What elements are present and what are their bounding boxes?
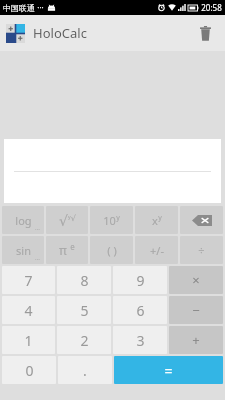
staticText: ...: [35, 254, 40, 262]
staticText: 3: [136, 331, 145, 350]
staticText: +/-: [150, 243, 164, 258]
staticText: +: [192, 331, 200, 349]
staticText: ( ): [107, 243, 117, 258]
staticText: π: [59, 242, 67, 258]
button[interactable]: sin: [2, 236, 44, 264]
button[interactable]: 2: [57, 326, 111, 354]
button[interactable]: Pi and e constants: [46, 236, 88, 264]
button[interactable]: x: [135, 206, 178, 234]
staticText: 5: [80, 301, 89, 320]
button[interactable]: 8: [57, 266, 111, 294]
button[interactable]: 1: [2, 326, 55, 354]
button[interactable]: 0: [2, 356, 56, 384]
staticText: y: [158, 213, 162, 223]
staticText: HoloCalc: [33, 24, 87, 42]
button[interactable]: 5: [57, 296, 111, 324]
button[interactable]: +: [169, 326, 223, 354]
staticText: log: [15, 213, 32, 228]
staticText: 4: [24, 301, 33, 320]
staticText: 8: [80, 271, 89, 290]
button[interactable]: Clear history: [193, 21, 217, 45]
staticText: 1: [24, 331, 33, 350]
button[interactable]: 7: [2, 266, 55, 294]
staticText: 7: [24, 271, 33, 290]
staticText: 10: [103, 213, 116, 228]
staticText: ...: [35, 224, 40, 232]
staticText: 2: [80, 331, 89, 350]
button[interactable]: =: [114, 356, 223, 384]
button[interactable]: 9: [113, 266, 167, 294]
staticText: 中国联通: [3, 3, 35, 13]
staticText: x: [152, 213, 158, 228]
button[interactable]: .: [58, 356, 112, 384]
button[interactable]: log: [2, 206, 44, 234]
button[interactable]: [4, 139, 221, 203]
button[interactable]: ×: [169, 266, 223, 294]
staticText: ÷: [198, 243, 205, 258]
button[interactable]: 6: [113, 296, 167, 324]
button[interactable]: ( ): [90, 236, 133, 264]
staticText: −: [192, 301, 200, 319]
staticText: =: [164, 361, 173, 380]
button[interactable]: 3: [113, 326, 167, 354]
staticText: .: [83, 361, 87, 380]
staticText: 20:58: [201, 2, 222, 13]
staticText: 6: [136, 301, 145, 320]
staticText: 9: [136, 271, 145, 290]
button[interactable]: +/-: [135, 236, 178, 264]
button[interactable]: Square root: [46, 206, 88, 234]
staticText: sin: [16, 243, 31, 258]
staticText: y: [116, 213, 120, 223]
staticText: ×: [192, 271, 200, 289]
staticText: ···: [37, 2, 44, 13]
button[interactable]: 10: [90, 206, 133, 234]
button[interactable]: 4: [2, 296, 55, 324]
button[interactable]: Backspace: [180, 206, 223, 234]
button[interactable]: −: [169, 296, 223, 324]
staticText: e: [70, 241, 75, 252]
staticText: 0: [25, 361, 34, 380]
staticText: ʸ√: [68, 212, 76, 223]
staticText: √: [59, 213, 68, 229]
